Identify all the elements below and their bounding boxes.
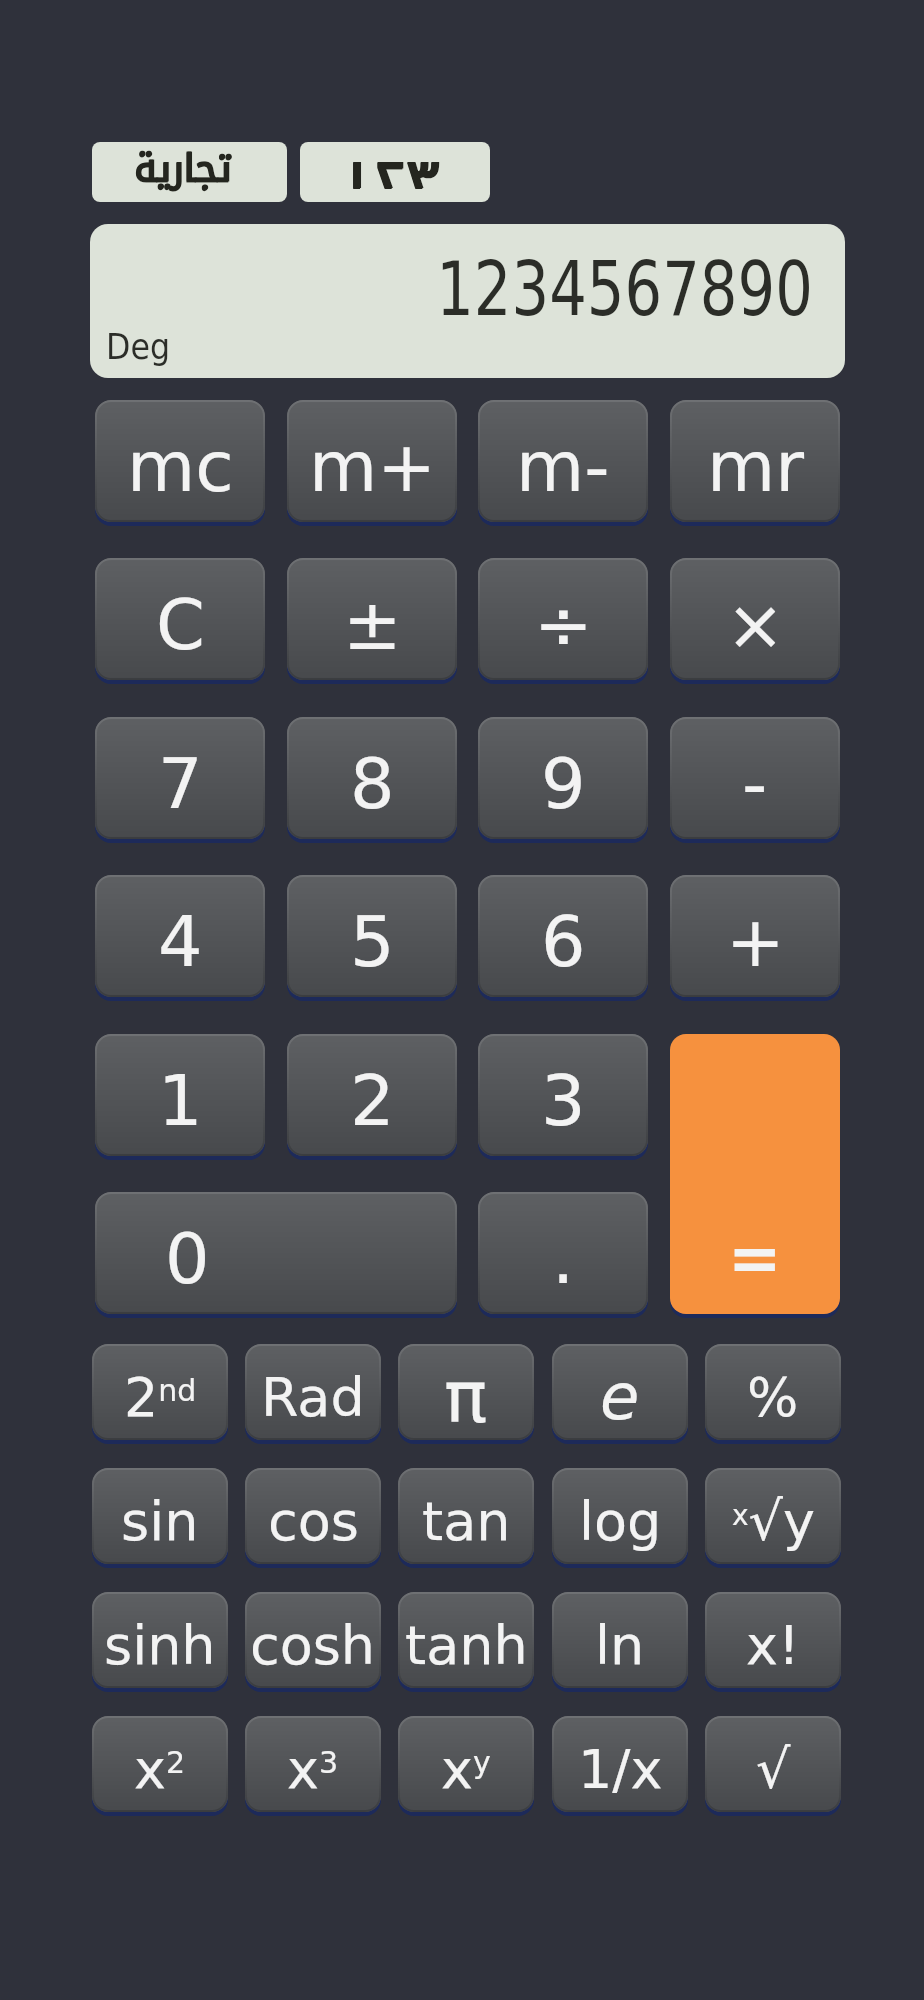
button[interactable]: C <box>95 558 265 680</box>
staticText: sinh <box>104 1614 216 1677</box>
button[interactable]: 9 <box>478 717 648 839</box>
button[interactable]: Rad <box>245 1344 381 1440</box>
button[interactable]: log <box>552 1468 688 1564</box>
staticText: ± <box>343 584 402 665</box>
button[interactable]: 8 <box>287 717 457 839</box>
button[interactable]: x√y <box>705 1468 841 1564</box>
staticText: ١٢٣ <box>340 142 440 188</box>
button[interactable]: تجارية <box>92 142 287 202</box>
button[interactable]: 4 <box>95 875 265 997</box>
staticText: 8 <box>350 743 395 824</box>
staticText: تجارية <box>134 142 232 193</box>
button[interactable]: x2 <box>92 1716 228 1812</box>
button[interactable]: 1 <box>95 1034 265 1156</box>
button[interactable]: ١٢٣ <box>300 142 490 202</box>
staticText: x3 <box>287 1738 339 1801</box>
staticText: sin <box>121 1490 199 1553</box>
staticText: tan <box>422 1490 511 1553</box>
button[interactable]: 6 <box>478 875 648 997</box>
button[interactable]: 2nd <box>92 1344 228 1440</box>
button[interactable]: . <box>478 1192 648 1314</box>
staticText: تجارية <box>135 142 233 192</box>
button[interactable]: xy <box>398 1716 534 1812</box>
button[interactable]: √ <box>705 1716 841 1812</box>
staticText: m+ <box>309 426 436 507</box>
button[interactable]: ÷ <box>478 558 648 680</box>
staticText: 6 <box>541 901 586 982</box>
button[interactable]: + <box>670 875 840 997</box>
staticText: × <box>726 584 785 665</box>
button[interactable]: x! <box>705 1592 841 1688</box>
button[interactable]: ± <box>287 558 457 680</box>
staticText: = <box>728 1221 782 1296</box>
staticText: √ <box>756 1738 791 1801</box>
staticText: 2 <box>350 1060 395 1141</box>
staticText: Deg <box>106 326 170 368</box>
button[interactable]: tanh <box>398 1592 534 1688</box>
staticText: 1234567890 <box>436 246 813 332</box>
button[interactable]: π <box>398 1344 534 1440</box>
staticText: 0 <box>165 1218 210 1299</box>
button[interactable]: mr <box>670 400 840 522</box>
staticText: e <box>600 1360 640 1435</box>
button[interactable]: = <box>670 1034 840 1314</box>
staticText: cos <box>268 1490 359 1553</box>
button[interactable]: 5 <box>287 875 457 997</box>
staticText: 5 <box>350 901 395 982</box>
staticText: ÷ <box>534 584 593 665</box>
button[interactable]: mc <box>95 400 265 522</box>
staticText: 3 <box>541 1060 586 1141</box>
staticText: log <box>579 1490 662 1553</box>
button[interactable]: sinh <box>92 1592 228 1688</box>
staticText: x√y <box>732 1490 815 1553</box>
staticText: x2 <box>134 1738 186 1801</box>
staticText: mc <box>127 426 234 507</box>
staticText: mr <box>707 426 804 507</box>
staticText: Rad <box>261 1366 365 1429</box>
staticText: cosh <box>250 1614 376 1677</box>
staticText: m- <box>516 426 610 507</box>
button[interactable]: tan <box>398 1468 534 1564</box>
staticText: 1/x <box>578 1738 663 1801</box>
button[interactable]: 2 <box>287 1034 457 1156</box>
button[interactable]: sin <box>92 1468 228 1564</box>
button[interactable]: x3 <box>245 1716 381 1812</box>
staticText: تجارية <box>134 142 232 192</box>
button[interactable]: m- <box>478 400 648 522</box>
staticText: 4 <box>158 901 203 982</box>
staticText: ln <box>595 1614 645 1677</box>
staticText: 2nd <box>124 1366 197 1429</box>
button[interactable]: cosh <box>245 1592 381 1688</box>
staticText: - <box>742 743 768 824</box>
button[interactable]: cos <box>245 1468 381 1564</box>
staticText: xy <box>441 1738 491 1801</box>
button[interactable]: × <box>670 558 840 680</box>
button[interactable]: 7 <box>95 717 265 839</box>
staticText: 1 <box>158 1060 203 1141</box>
button[interactable]: 1/x <box>552 1716 688 1812</box>
staticText: tanh <box>405 1614 528 1677</box>
button[interactable]: - <box>670 717 840 839</box>
button[interactable]: e <box>552 1344 688 1440</box>
staticText: C <box>156 584 205 665</box>
staticText: ١٢٣ <box>340 142 440 189</box>
staticText: + <box>726 901 785 982</box>
button[interactable]: % <box>705 1344 841 1440</box>
button[interactable]: ln <box>552 1592 688 1688</box>
staticText: ١٢٣ <box>341 142 441 188</box>
staticText: x! <box>746 1614 800 1677</box>
button[interactable]: m+ <box>287 400 457 522</box>
staticText: 9 <box>541 743 586 824</box>
button[interactable]: 3 <box>478 1034 648 1156</box>
button[interactable]: 0 <box>95 1192 457 1314</box>
staticText: % <box>747 1366 799 1429</box>
staticText: . <box>552 1218 575 1299</box>
staticText: π <box>444 1355 488 1439</box>
staticText: 7 <box>158 743 203 824</box>
